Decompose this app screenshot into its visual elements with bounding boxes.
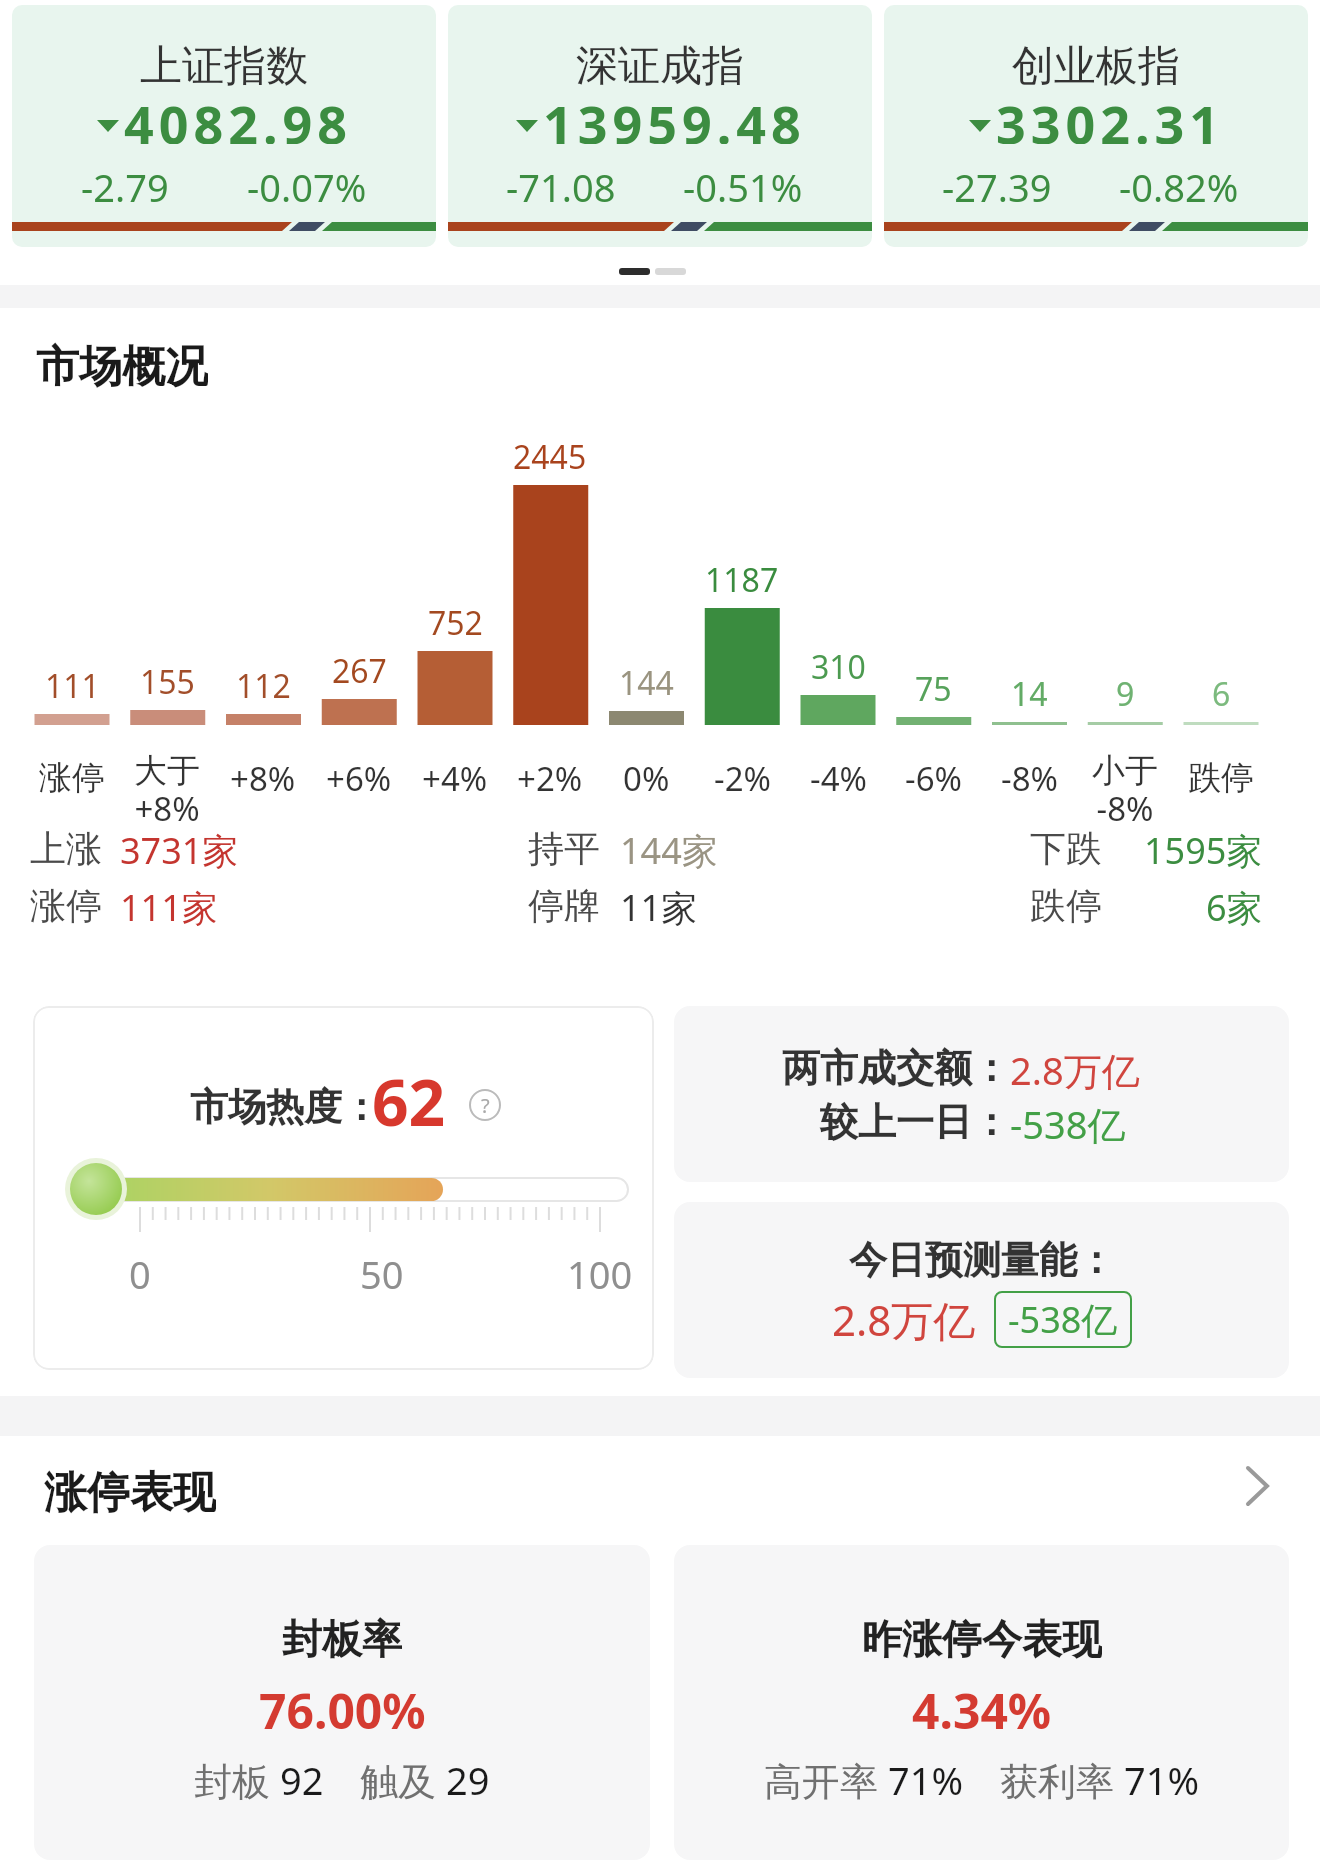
staticText: 752 [428,601,483,645]
staticText: 上证指数 [140,40,308,90]
staticText: 2445 [513,435,587,479]
staticText: 4.34% [912,1678,1052,1736]
staticText: 13959.48 [543,88,806,144]
staticText: 创业板指 [1012,40,1180,90]
staticText: 75 [915,667,952,711]
staticText: 112 [236,664,291,708]
staticText: 跌停 [1030,883,1102,927]
staticText: 大于 +8% [134,750,200,830]
staticText: 111 [45,664,100,708]
staticText: 6家 [1206,883,1263,927]
staticText: -0.82% [1119,161,1239,205]
staticText: 今日预测量能： [849,1236,1115,1284]
staticText: 144 [619,661,674,705]
staticText: 310 [811,645,866,689]
staticText: 6 [1212,672,1231,716]
staticText: 停牌 [528,883,600,927]
staticText: 持平 [528,826,600,870]
staticText: 高开率 [764,1754,888,1804]
staticText: 62 [372,1058,446,1130]
staticText: 0% [623,756,670,800]
staticText: 267 [332,649,387,693]
staticText: 11家 [620,883,698,927]
staticText: 0 [129,1248,151,1292]
staticText: -6% [905,756,962,800]
staticText: 深证成指 [576,40,744,90]
staticText: +2% [517,756,583,800]
staticText: 上涨 [30,826,102,870]
staticText: 71% [1124,1754,1200,1804]
staticText: -71.08 [506,161,616,205]
staticText: 3731家 [120,826,239,870]
staticText: 71% [888,1754,964,1804]
staticText: 92 [280,1754,324,1804]
staticText: -0.07% [247,161,367,205]
staticText: 小于 -8% [1092,750,1158,830]
staticText: ? [481,1092,490,1119]
staticText: 76.00% [259,1678,426,1736]
staticText: 跌停 [1188,757,1254,799]
staticText: 3302.31 [996,88,1225,144]
staticText: -538亿 [1008,1295,1118,1344]
staticText: 涨停 [30,883,102,927]
staticText: -2% [714,756,771,800]
staticText: 14 [1011,672,1048,716]
staticText: 2.8万亿 [1010,1044,1140,1092]
staticText: 昨涨停今表现 [862,1614,1102,1662]
staticText: -8% [1001,756,1058,800]
staticText: -2.79 [81,161,169,205]
staticText: +6% [326,756,392,800]
staticText: 100 [567,1248,633,1292]
staticText: 涨停 [39,757,105,799]
staticText: +4% [422,756,488,800]
staticText: -27.39 [942,161,1052,205]
staticText: 1595家 [1144,826,1263,870]
staticText: 1187 [705,558,779,602]
staticText: 市场热度： [190,1083,380,1131]
staticText: -0.51% [683,161,803,205]
staticText: 市场概况 [36,340,208,388]
staticText: -4% [810,756,867,800]
staticText: 50 [360,1248,404,1292]
staticText: 144家 [620,826,718,870]
staticText: 获利率 [1000,1754,1124,1804]
staticText: 9 [1116,672,1135,716]
staticText: 触及 [360,1754,446,1804]
staticText: 111家 [120,883,218,927]
staticText: 涨停表现 [44,1466,216,1516]
staticText: 较上一日： [820,1098,1010,1146]
staticText: 29 [446,1754,490,1804]
staticText: -538亿 [1010,1098,1126,1146]
staticText: +8% [230,756,296,800]
staticText: 155 [140,660,195,704]
staticText: 4082.98 [124,88,353,144]
staticText: 封板 [194,1754,280,1804]
staticText: 两市成交额： [782,1044,1010,1092]
staticText: 2.8万亿 [832,1291,976,1348]
staticText: 封板率 [282,1614,402,1662]
staticText: 下跌 [1030,826,1102,870]
